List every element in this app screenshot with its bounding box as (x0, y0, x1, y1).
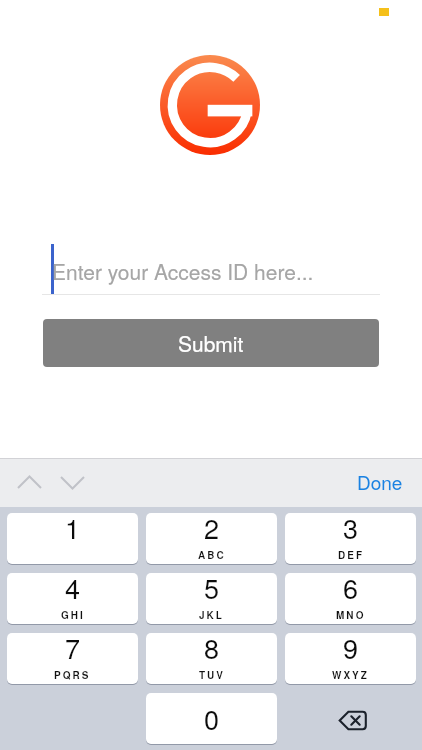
staticText: Enter your Access ID here... (52, 256, 314, 286)
staticText: TUV (199, 668, 225, 682)
staticText: Done (357, 468, 403, 495)
button[interactable]: 0 (146, 693, 277, 744)
button[interactable]: Next field (57, 467, 89, 499)
button[interactable]: Enter your Access ID here... (42, 243, 380, 296)
button[interactable]: 5 (146, 573, 277, 624)
button[interactable]: 9 (285, 633, 416, 684)
staticText: 4 (65, 573, 81, 607)
staticText: JKL (199, 608, 224, 622)
staticText: 1 (65, 513, 81, 547)
button[interactable]: Backspace (327, 699, 379, 745)
button[interactable]: Previous field (14, 467, 46, 499)
staticText: 0 (204, 699, 220, 738)
button[interactable]: 4 (7, 573, 138, 624)
staticText: 2 (204, 513, 220, 547)
staticText: MNO (336, 608, 366, 622)
button[interactable]: Submit (43, 319, 379, 367)
staticText: ABC (198, 548, 226, 562)
button[interactable]: 8 (146, 633, 277, 684)
staticText: GHI (61, 608, 85, 622)
button[interactable]: 6 (285, 573, 416, 624)
button[interactable]: 7 (7, 633, 138, 684)
button[interactable]: 3 (285, 513, 416, 564)
button[interactable]: Done (357, 459, 403, 507)
button[interactable]: 1 (7, 513, 138, 564)
staticText: 8 (204, 633, 220, 667)
staticText: Submit (178, 328, 244, 358)
staticText: WXYZ (332, 668, 369, 682)
staticText: 9 (343, 633, 359, 667)
button[interactable]: 2 (146, 513, 277, 564)
staticText: 6 (343, 573, 359, 607)
staticText: PQRS (54, 668, 91, 682)
staticText: 7 (65, 633, 81, 667)
staticText: 3 (343, 513, 359, 547)
staticText: DEF (338, 548, 364, 562)
staticText: 5 (204, 573, 220, 607)
